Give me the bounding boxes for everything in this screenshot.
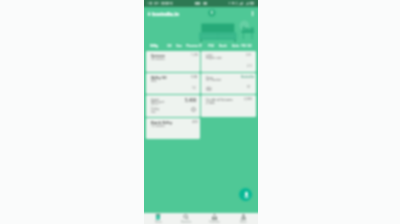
button[interactable]: Bank bbox=[219, 43, 227, 47]
staticText: abc bbox=[206, 85, 212, 90]
button[interactable]: More options bbox=[248, 9, 256, 17]
staticText: 12 bbox=[192, 86, 196, 90]
button[interactable]: Address bar bbox=[144, 7, 258, 21]
staticText: Pharma bbox=[186, 43, 199, 47]
staticText: 3.9 bbox=[246, 53, 251, 57]
button[interactable]: Sensex bbox=[146, 51, 200, 72]
staticText: PSU bbox=[208, 43, 215, 47]
staticText: 51 bbox=[247, 85, 251, 89]
button[interactable]: Gold bbox=[146, 95, 200, 117]
button[interactable]: Gas bbox=[176, 43, 182, 47]
button[interactable]: Oil bbox=[247, 43, 252, 47]
button[interactable]: Oil bbox=[167, 43, 172, 47]
staticText: bseindia.in bbox=[152, 11, 180, 18]
staticText: USD bbox=[206, 53, 213, 58]
staticText: new bbox=[206, 88, 212, 92]
staticText: live bbox=[151, 110, 156, 114]
staticText: FM bbox=[241, 43, 246, 47]
button[interactable]: USD bbox=[201, 51, 256, 72]
staticText: 22 ct bbox=[151, 102, 158, 106]
staticText: More bbox=[240, 220, 247, 224]
button[interactable]: Portfolio bbox=[200, 213, 229, 224]
staticText: Oil bbox=[167, 43, 172, 47]
button[interactable]: Bank Nifty bbox=[146, 118, 200, 139]
button[interactable]: Auto bbox=[232, 43, 240, 47]
staticText: Auto bbox=[232, 43, 240, 47]
button[interactable]: Dow bbox=[201, 73, 256, 94]
staticText: Bank bbox=[219, 43, 227, 47]
staticText: 30 stocks bbox=[151, 57, 165, 61]
button[interactable]: Nifty bbox=[150, 43, 159, 47]
staticText: Bestseller bbox=[241, 75, 255, 79]
staticText: 2 3 bbox=[247, 64, 252, 68]
staticText: Today bbox=[151, 107, 160, 111]
staticText: 430 bbox=[192, 120, 198, 124]
staticText: Gold bbox=[151, 97, 159, 102]
staticText: Bank Nifty bbox=[151, 120, 173, 125]
button[interactable]: Nifty 50 bbox=[146, 73, 200, 94]
staticText: US market bbox=[206, 78, 222, 82]
button[interactable]: Pharma bbox=[186, 43, 199, 47]
staticText: Crude oil futures bbox=[206, 97, 233, 102]
staticText: 0.84 bbox=[191, 75, 198, 79]
staticText: Dow bbox=[206, 75, 214, 80]
button[interactable]: IT bbox=[199, 43, 202, 47]
staticText: IT bbox=[199, 43, 202, 47]
staticText: Rupee rate bbox=[206, 56, 222, 60]
button[interactable]: Voice search bbox=[239, 188, 252, 201]
staticText: 2 lots bbox=[206, 100, 215, 105]
staticText: 1.2% bbox=[191, 53, 199, 57]
staticText: MCX spot bbox=[151, 100, 165, 104]
staticText: Nifty bbox=[150, 43, 159, 47]
button[interactable]: More bbox=[229, 213, 258, 224]
staticText: Sensex bbox=[151, 53, 165, 58]
button[interactable]: Markets bbox=[172, 213, 200, 224]
button[interactable]: FM bbox=[241, 43, 246, 47]
staticText: 2,650 bbox=[244, 97, 253, 101]
button[interactable]: News bbox=[144, 213, 172, 224]
button[interactable]: Site info bbox=[208, 9, 216, 17]
button[interactable]: Crude oil futures bbox=[201, 95, 256, 117]
staticText: Nifty 50 bbox=[151, 75, 167, 80]
staticText: Gas bbox=[176, 43, 182, 47]
staticText: 5,490 bbox=[185, 97, 197, 103]
staticText: Oil bbox=[247, 43, 252, 47]
staticText: Markets bbox=[181, 220, 192, 224]
staticText: Portfolio bbox=[209, 220, 220, 224]
button[interactable]: PSU bbox=[208, 43, 215, 47]
staticText: News bbox=[155, 220, 162, 224]
staticText: 12 stocks bbox=[151, 124, 165, 128]
staticText: NSE bbox=[151, 79, 157, 83]
